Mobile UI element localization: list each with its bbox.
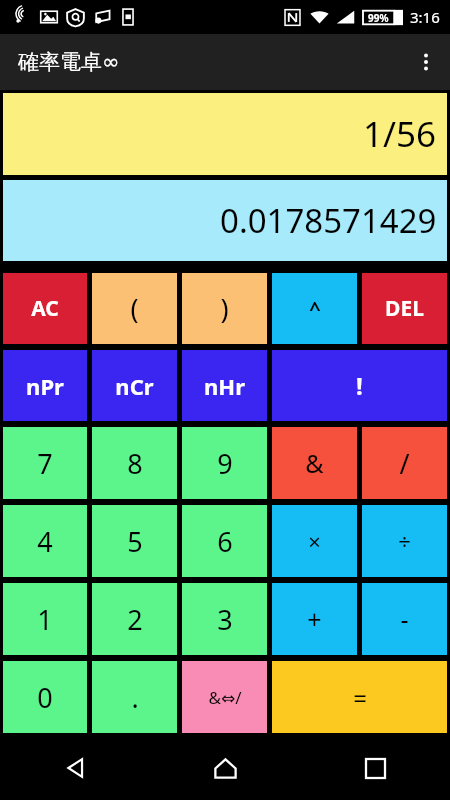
staticText: ÷ bbox=[398, 526, 411, 556]
button[interactable]: Home bbox=[150, 736, 300, 800]
button[interactable]: ( bbox=[92, 273, 177, 344]
button[interactable]: ! bbox=[272, 350, 447, 421]
staticText: / bbox=[399, 445, 410, 482]
staticText: - bbox=[400, 602, 409, 636]
staticText: AC bbox=[31, 294, 59, 323]
button[interactable]: & bbox=[272, 427, 357, 499]
button[interactable]: + bbox=[272, 583, 357, 655]
button[interactable]: DEL bbox=[362, 273, 447, 344]
button[interactable]: 0 bbox=[3, 661, 87, 733]
button[interactable]: = bbox=[272, 661, 447, 733]
button[interactable]: AC bbox=[3, 273, 87, 344]
button[interactable]: 6 bbox=[182, 505, 267, 577]
button[interactable]: &⇔/ bbox=[182, 661, 267, 733]
button[interactable]: / bbox=[362, 427, 447, 499]
staticText: nHr bbox=[204, 371, 245, 401]
button[interactable]: 4 bbox=[3, 505, 87, 577]
staticText: & bbox=[305, 446, 324, 480]
staticText: 8 bbox=[127, 445, 143, 482]
button[interactable]: nPr bbox=[3, 350, 87, 421]
button[interactable]: More options bbox=[402, 34, 450, 90]
staticText: 7 bbox=[37, 445, 53, 482]
staticText: &⇔/ bbox=[208, 686, 242, 709]
staticText: × bbox=[308, 526, 321, 556]
button[interactable]: ÷ bbox=[362, 505, 447, 577]
staticText: 0.0178571429 bbox=[220, 198, 437, 243]
staticText: . bbox=[131, 679, 139, 716]
button[interactable]: 1/56 bbox=[3, 93, 447, 175]
staticText: DEL bbox=[385, 294, 424, 323]
staticText: ! bbox=[356, 369, 363, 402]
button[interactable]: 3 bbox=[182, 583, 267, 655]
button[interactable]: 9 bbox=[182, 427, 267, 499]
staticText: 99% bbox=[368, 11, 389, 25]
staticText: = bbox=[353, 681, 367, 714]
button[interactable]: Back bbox=[0, 736, 150, 800]
staticText: 3:16 bbox=[410, 7, 440, 27]
staticText: 確率電卓∞ bbox=[18, 49, 120, 75]
button[interactable]: - bbox=[362, 583, 447, 655]
staticText: nCr bbox=[115, 371, 154, 401]
staticText: 9 bbox=[217, 445, 233, 482]
staticText: + bbox=[307, 602, 322, 636]
staticText: 1 bbox=[37, 601, 53, 638]
button[interactable]: 7 bbox=[3, 427, 87, 499]
staticText: 0 bbox=[37, 679, 53, 716]
staticText: 1/56 bbox=[363, 110, 437, 158]
staticText: 3 bbox=[217, 601, 233, 638]
button[interactable]: 0.0178571429 bbox=[3, 180, 447, 261]
staticText: 5 bbox=[127, 523, 143, 560]
button[interactable]: nHr bbox=[182, 350, 267, 421]
button[interactable]: Recent apps bbox=[300, 736, 450, 800]
button[interactable]: ) bbox=[182, 273, 267, 344]
button[interactable]: 8 bbox=[92, 427, 177, 499]
button[interactable]: nCr bbox=[92, 350, 177, 421]
staticText: 4 bbox=[37, 523, 53, 560]
staticText: ( bbox=[130, 290, 139, 327]
staticText: ) bbox=[220, 290, 229, 327]
staticText: 6 bbox=[217, 523, 233, 560]
staticText: nPr bbox=[26, 371, 64, 401]
button[interactable]: 1 bbox=[3, 583, 87, 655]
button[interactable]: ^ bbox=[272, 273, 357, 344]
button[interactable]: 2 bbox=[92, 583, 177, 655]
staticText: ^ bbox=[309, 295, 321, 322]
button[interactable]: . bbox=[92, 661, 177, 733]
button[interactable]: × bbox=[272, 505, 357, 577]
staticText: 2 bbox=[127, 601, 143, 638]
button[interactable]: 5 bbox=[92, 505, 177, 577]
